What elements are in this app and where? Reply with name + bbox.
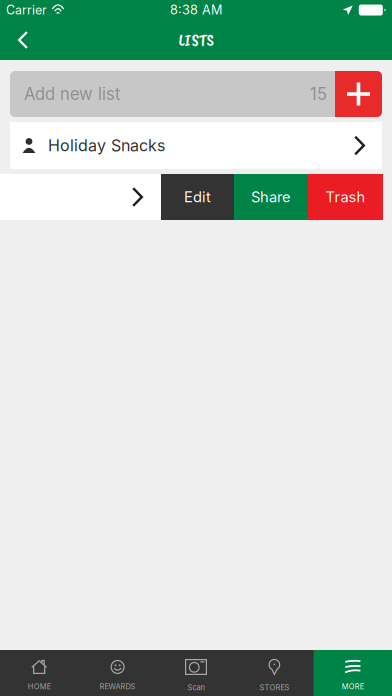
button[interactable]: Scan <box>157 650 235 696</box>
button[interactable]: Back <box>0 20 46 60</box>
staticText: Holiday Snacks <box>48 136 165 155</box>
button[interactable]: Share <box>234 174 308 220</box>
staticText: Share <box>251 188 291 206</box>
staticText: Trash <box>325 188 365 206</box>
staticText: Add new list <box>24 84 120 104</box>
button[interactable]: Add list <box>335 71 382 117</box>
staticText: 15 <box>310 84 327 104</box>
button[interactable]: REWARDS <box>78 650 157 696</box>
staticText: HOME <box>28 682 51 691</box>
staticText: STORES <box>259 683 289 692</box>
staticText: Edit <box>184 188 211 206</box>
staticText: REWARDS <box>100 682 136 691</box>
staticText: Carrier <box>6 2 47 17</box>
button[interactable]: Holiday Snacks <box>10 122 382 169</box>
staticText: Scan <box>187 683 204 692</box>
button[interactable] <box>0 174 161 220</box>
staticText: 8:38 AM <box>170 2 222 18</box>
button[interactable]: Trash <box>308 174 383 220</box>
button[interactable]: Edit <box>161 174 234 220</box>
button[interactable]: STORES <box>235 650 314 696</box>
staticText: LISTS <box>178 29 213 51</box>
button[interactable]: MORE <box>314 650 392 696</box>
button[interactable]: HOME <box>0 650 78 696</box>
staticText: MORE <box>342 682 364 691</box>
